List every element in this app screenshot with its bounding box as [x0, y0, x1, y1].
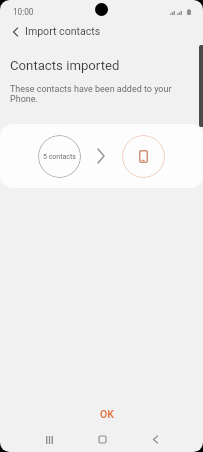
button[interactable]: 5 contacts [0, 124, 203, 188]
button[interactable]: OK [86, 402, 128, 426]
staticText: 10:00 [13, 7, 34, 17]
staticText: 5 contacts [43, 153, 76, 161]
button[interactable]: Home [84, 429, 120, 452]
staticText: OK [100, 408, 114, 420]
staticText: These contacts have been added to your P… [10, 84, 182, 104]
button[interactable]: Back [137, 429, 173, 452]
staticText: Import contacts [25, 25, 101, 37]
button[interactable]: Recent apps [31, 429, 67, 452]
staticText: Contacts imported [10, 58, 120, 73]
button[interactable]: Navigate up [4, 21, 26, 43]
